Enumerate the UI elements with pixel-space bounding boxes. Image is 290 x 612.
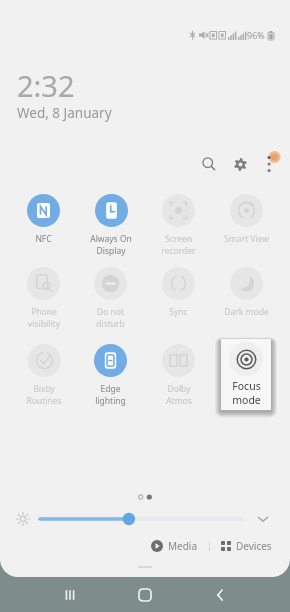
button[interactable]: Edge lighting bbox=[94, 344, 127, 407]
staticText: Wed, 8 January bbox=[17, 104, 112, 122]
staticText: Edge lighting bbox=[95, 383, 126, 407]
button[interactable]: More options bbox=[256, 149, 286, 179]
staticText: Phone visibility bbox=[28, 306, 60, 330]
button[interactable]: Home bbox=[125, 577, 165, 612]
button[interactable]: Expand bbox=[254, 510, 272, 528]
button[interactable]: Back bbox=[200, 577, 240, 612]
button[interactable]: Dolby Atmos bbox=[162, 344, 195, 407]
button[interactable]: Media bbox=[149, 539, 200, 553]
button[interactable]: NFC bbox=[27, 194, 60, 245]
staticText: Always On Display bbox=[90, 233, 132, 257]
staticText: Dark mode bbox=[224, 306, 269, 318]
button[interactable]: Focus mode bbox=[221, 339, 271, 410]
button[interactable]: Always On Display bbox=[90, 194, 132, 257]
staticText: Focus mode bbox=[232, 379, 261, 407]
staticText: Bixby Routines bbox=[26, 383, 62, 407]
staticText: Do not disturb bbox=[96, 306, 125, 330]
staticText: Sync bbox=[169, 306, 188, 318]
button[interactable]: Phone visibility bbox=[27, 267, 60, 330]
button[interactable]: Settings bbox=[225, 149, 255, 179]
button[interactable]: Search bbox=[194, 149, 224, 179]
staticText: Dolby Atmos bbox=[166, 383, 192, 407]
staticText: 2:32 bbox=[17, 66, 75, 105]
staticText: Screen recorder bbox=[161, 233, 196, 257]
button[interactable]: Smart View bbox=[224, 194, 269, 245]
button[interactable]: Do not disturb bbox=[94, 267, 127, 330]
button[interactable]: Sync bbox=[162, 267, 195, 318]
button[interactable]: Screen recorder bbox=[161, 194, 196, 257]
button[interactable]: Recents bbox=[50, 577, 90, 612]
staticText: Devices bbox=[236, 539, 272, 553]
button[interactable]: Dark mode bbox=[224, 267, 269, 318]
staticText: Smart View bbox=[224, 233, 269, 245]
button[interactable]: Bixby Routines bbox=[26, 344, 62, 407]
staticText: NFC bbox=[35, 233, 52, 245]
button[interactable]: Devices bbox=[219, 539, 274, 553]
staticText: 96% bbox=[247, 29, 265, 41]
staticText: Media bbox=[168, 539, 198, 553]
